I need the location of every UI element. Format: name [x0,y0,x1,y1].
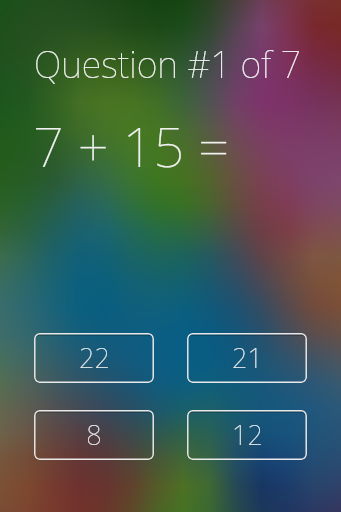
staticText: Question #1 of 7 [34,40,301,89]
button[interactable]: 22 [34,333,154,383]
button[interactable]: 21 [187,333,307,383]
button[interactable]: 8 [34,410,154,460]
staticText: 12 [232,416,263,453]
staticText: 7 + 15 = [33,109,230,183]
staticText: 22 [79,339,110,376]
staticText: 8 [86,416,102,453]
button[interactable]: 12 [187,410,307,460]
staticText: 21 [232,339,263,376]
